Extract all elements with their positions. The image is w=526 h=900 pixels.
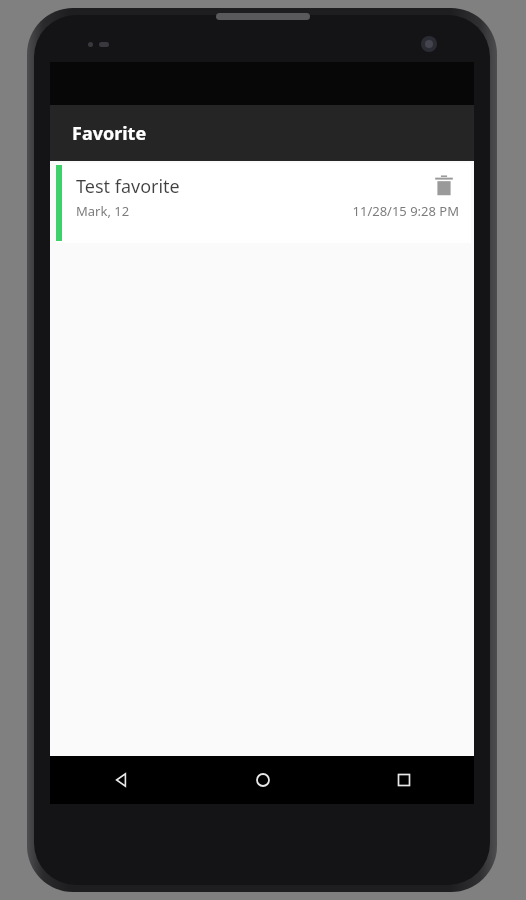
staticText: Favorite bbox=[72, 121, 147, 146]
button[interactable]: Back bbox=[50, 756, 192, 804]
staticText: Mark, 12 bbox=[76, 202, 130, 220]
staticText: 11/28/15 9:28 PM bbox=[352, 202, 459, 220]
button[interactable]: Home bbox=[192, 756, 333, 804]
button[interactable]: Delete bbox=[427, 169, 461, 203]
button[interactable]: Test favorite bbox=[56, 163, 471, 243]
staticText: Test favorite bbox=[76, 174, 180, 199]
button[interactable]: Recents bbox=[333, 756, 474, 804]
